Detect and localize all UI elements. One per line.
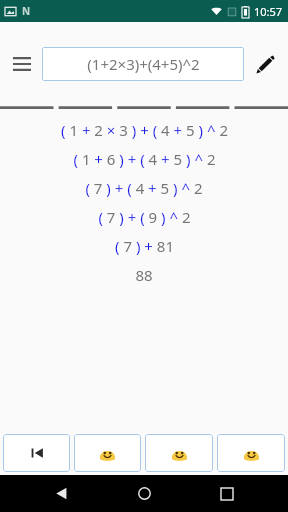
staticText: ( 7 ) + ( 9 ) ^ 2 — [98, 207, 191, 227]
button[interactable]: Home — [122, 475, 166, 512]
button[interactable]: Menu — [4, 46, 40, 82]
staticText: N — [22, 4, 31, 18]
button[interactable]: ( 1 + 6 ) + ( 4 + 5 ) ^ 2 — [0, 144, 288, 173]
button[interactable]: (1+2×3)+(4+5)^2 — [42, 47, 244, 81]
button[interactable]: Edit — [246, 45, 284, 83]
button[interactable]: Back — [39, 475, 83, 512]
button[interactable]: ( 1 + 2 × 3 ) + ( 4 + 5 ) ^ 2 — [0, 115, 288, 144]
staticText: ( 7 ) + 81 — [115, 236, 174, 256]
staticText: 88 — [135, 265, 153, 285]
button[interactable]: Emoji action 3 — [217, 434, 285, 472]
button[interactable]: Recent apps — [205, 475, 249, 512]
staticText: ( 1 + 2 × 3 ) + ( 4 + 5 ) ^ 2 — [61, 120, 228, 140]
staticText: ( 7 ) + ( 4 + 5 ) ^ 2 — [85, 178, 203, 198]
button[interactable]: ( 7 ) + ( 9 ) ^ 2 — [0, 202, 288, 231]
staticText: 10:57 — [254, 4, 283, 19]
button[interactable]: 88 — [0, 260, 288, 289]
button[interactable]: ( 7 ) + 81 — [0, 231, 288, 260]
button[interactable]: Skip to start — [3, 434, 70, 472]
button[interactable]: ( 7 ) + ( 4 + 5 ) ^ 2 — [0, 173, 288, 202]
staticText: ( 1 + 6 ) + ( 4 + 5 ) ^ 2 — [73, 149, 216, 169]
button[interactable]: Emoji action 2 — [145, 434, 213, 472]
button[interactable]: Emoji action 1 — [74, 434, 141, 472]
staticText: (1+2×3)+(4+5)^2 — [87, 54, 200, 74]
